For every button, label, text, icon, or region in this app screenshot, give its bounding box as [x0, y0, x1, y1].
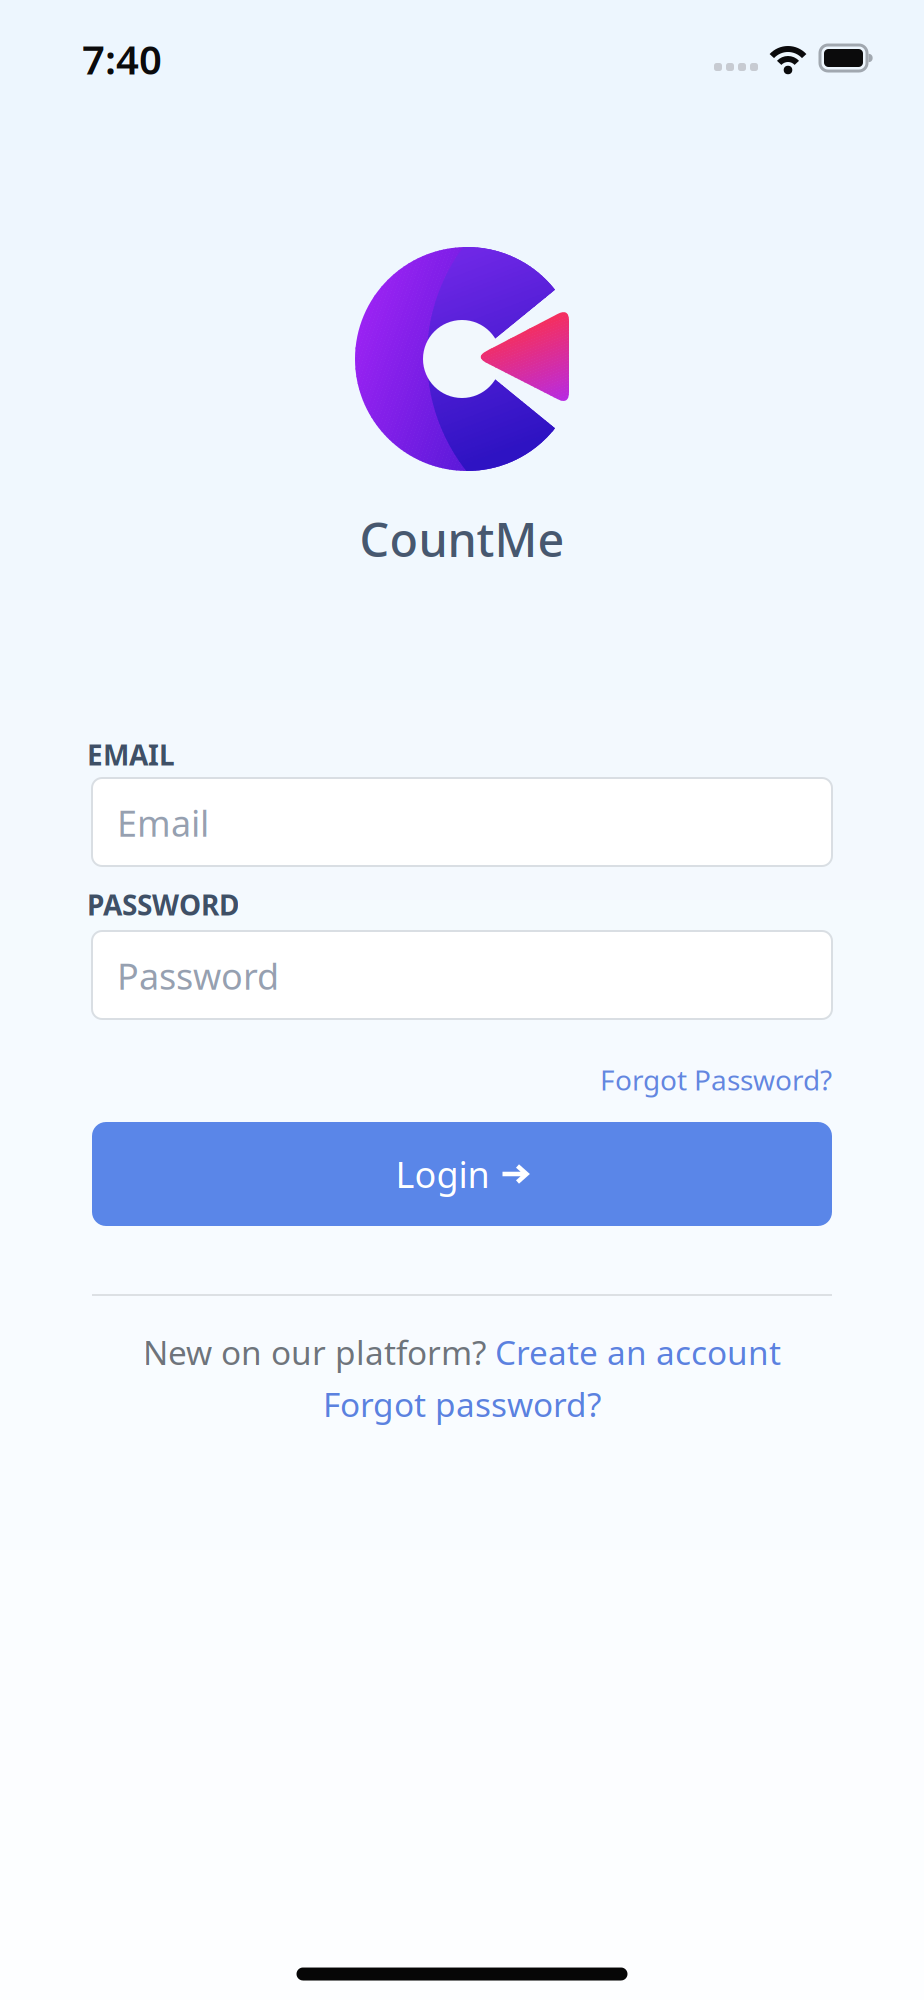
staticText: Forgot Password? [600, 1061, 832, 1098]
button[interactable]: Forgot Password? [600, 1061, 832, 1098]
staticText: Password [117, 952, 279, 1000]
staticText: Login [395, 1150, 489, 1198]
staticText: 7:40 [82, 32, 162, 85]
button[interactable]: Forgot password? [323, 1382, 601, 1426]
button[interactable]: Password [92, 931, 832, 1019]
button[interactable]: Create an account [495, 1330, 781, 1374]
button[interactable]: Email [92, 778, 832, 866]
staticText: Email [117, 799, 209, 847]
staticText: Forgot password? [323, 1382, 601, 1426]
staticText: CountMe [359, 508, 564, 570]
staticText: Create an account [495, 1330, 781, 1374]
button[interactable]: Login [92, 1122, 832, 1226]
staticText: PASSWORD [87, 886, 239, 923]
staticText: New on our platform? [143, 1330, 486, 1374]
staticText: EMAIL [87, 736, 175, 773]
